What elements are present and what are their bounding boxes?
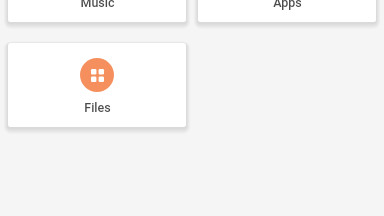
button[interactable]: Files — [8, 43, 186, 127]
button[interactable]: Music — [8, 0, 186, 22]
button[interactable]: Apps — [198, 0, 376, 22]
staticText: Music — [80, 0, 115, 10]
other: Files — [91, 69, 104, 82]
staticText: Files — [84, 100, 111, 115]
staticText: Apps — [273, 0, 302, 10]
